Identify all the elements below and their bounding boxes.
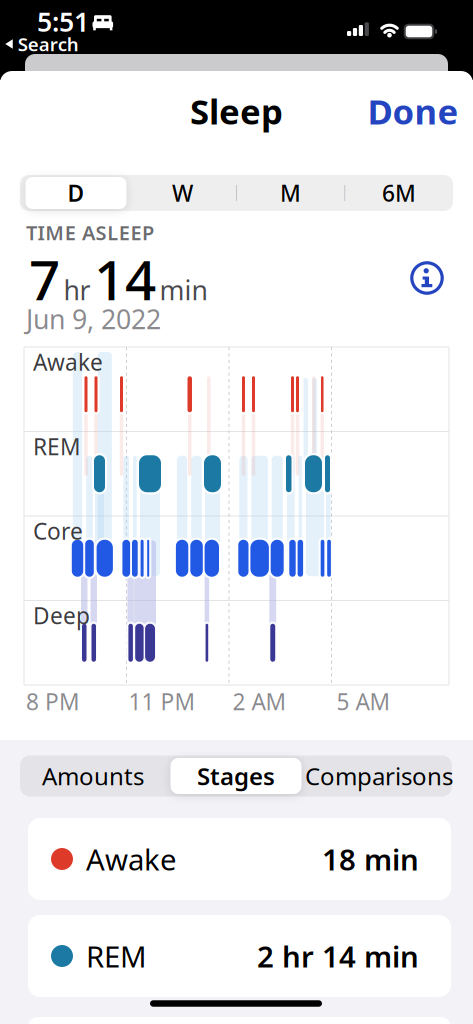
button[interactable]: M <box>239 176 343 210</box>
staticText: 2 AM <box>232 686 286 716</box>
staticText: 11 PM <box>128 686 195 716</box>
staticText: REM <box>86 936 147 975</box>
button[interactable]: Amounts <box>22 756 164 795</box>
staticText: Comparisons <box>305 760 453 792</box>
staticText: TIME ASLEEP <box>26 219 154 246</box>
staticText: D <box>67 178 84 208</box>
staticText: 5 AM <box>336 686 390 716</box>
staticText: 14 <box>94 243 156 315</box>
staticText: Search <box>18 32 79 56</box>
staticText: W <box>172 178 193 208</box>
button[interactable]: Comparisons <box>291 756 466 795</box>
staticText: REM <box>33 431 81 461</box>
button[interactable]: 6M <box>347 176 451 210</box>
staticText: Jun 9, 2022 <box>26 301 161 337</box>
staticText: Deep <box>33 600 90 630</box>
button[interactable]: Stages <box>166 756 306 795</box>
staticText: 6M <box>382 178 416 208</box>
button[interactable]: W <box>130 176 234 210</box>
staticText: Amounts <box>42 760 144 792</box>
staticText: 2 hr 14 min <box>257 936 419 975</box>
staticText: Stages <box>197 760 275 792</box>
staticText: M <box>280 178 301 208</box>
button[interactable]: Search <box>5 32 79 56</box>
staticText: 5:51 <box>37 4 89 39</box>
staticText: Awake <box>86 839 177 878</box>
staticText: Sleep <box>190 88 283 134</box>
staticText: hr <box>63 272 90 308</box>
button[interactable] <box>407 258 447 298</box>
button[interactable]: Done <box>367 88 458 134</box>
staticText: min <box>159 272 207 308</box>
staticText: Awake <box>33 347 103 377</box>
staticText: 18 min <box>322 839 419 878</box>
staticText: 8 PM <box>26 686 80 716</box>
staticText: Done <box>367 88 458 134</box>
staticText: Core <box>33 516 83 546</box>
staticText: 7 <box>29 243 60 315</box>
button[interactable]: D <box>24 176 128 210</box>
